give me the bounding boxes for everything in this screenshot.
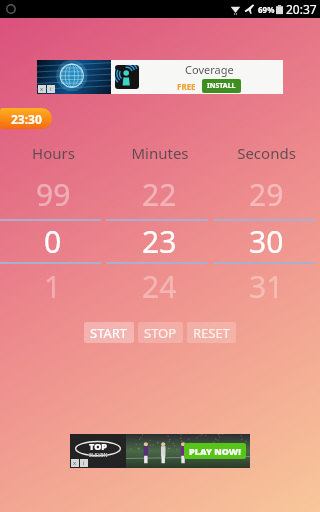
staticText: 23 bbox=[142, 221, 177, 262]
staticText: RESET bbox=[193, 324, 230, 342]
staticText: 69% bbox=[258, 4, 275, 15]
staticText: x bbox=[40, 85, 44, 93]
button[interactable]: 30 bbox=[213, 221, 320, 262]
button[interactable]: 99 bbox=[0, 169, 106, 219]
staticText: i bbox=[83, 459, 85, 467]
staticText: 30 bbox=[249, 221, 284, 262]
button[interactable]: Ad info bbox=[80, 459, 88, 467]
button[interactable]: PLAY NOW! bbox=[184, 443, 246, 459]
button[interactable]: 0 bbox=[0, 221, 106, 262]
staticText: 20:37 bbox=[286, 1, 317, 17]
staticText: PLAY NOW! bbox=[189, 445, 241, 457]
button[interactable]: Ad info bbox=[47, 85, 55, 93]
staticText: ELEVEN bbox=[89, 452, 108, 459]
staticText: i bbox=[50, 85, 52, 93]
button[interactable]: STOP bbox=[138, 322, 183, 343]
staticText: 1 bbox=[44, 266, 62, 307]
staticText: 31 bbox=[249, 266, 284, 307]
button[interactable]: 31 bbox=[213, 264, 320, 308]
staticText: Minutes bbox=[131, 143, 189, 163]
button[interactable]: 29 bbox=[213, 169, 320, 219]
staticText: 24 bbox=[142, 266, 177, 307]
staticText: Coverage bbox=[185, 62, 234, 77]
button[interactable]: Close ad bbox=[38, 85, 46, 93]
staticText: 0 bbox=[44, 221, 62, 262]
staticText: START bbox=[90, 324, 128, 342]
staticText: INSTALL bbox=[207, 81, 236, 91]
button[interactable]: 1 bbox=[0, 264, 106, 308]
staticText: Seconds bbox=[237, 143, 296, 163]
button[interactable]: Close ad bbox=[37, 60, 283, 94]
staticText: Hours bbox=[32, 143, 75, 163]
staticText: x bbox=[73, 459, 77, 467]
button[interactable]: 23:30 bbox=[0, 108, 52, 129]
staticText: 29 bbox=[249, 174, 284, 215]
button[interactable]: START bbox=[84, 322, 134, 343]
staticText: 23:30 bbox=[11, 111, 42, 127]
staticText: TOP bbox=[89, 440, 108, 452]
button[interactable]: TOP bbox=[70, 434, 250, 468]
button[interactable]: RESET bbox=[187, 322, 236, 343]
button[interactable]: Close ad bbox=[71, 459, 79, 467]
staticText: 22 bbox=[142, 174, 177, 215]
button[interactable]: 24 bbox=[106, 264, 213, 308]
button[interactable]: 22 bbox=[106, 169, 213, 219]
button[interactable]: INSTALL bbox=[202, 79, 241, 93]
button[interactable]: 23 bbox=[106, 221, 213, 262]
staticText: FREE bbox=[177, 81, 196, 92]
staticText: STOP bbox=[144, 324, 177, 342]
staticText: 99 bbox=[36, 174, 71, 215]
